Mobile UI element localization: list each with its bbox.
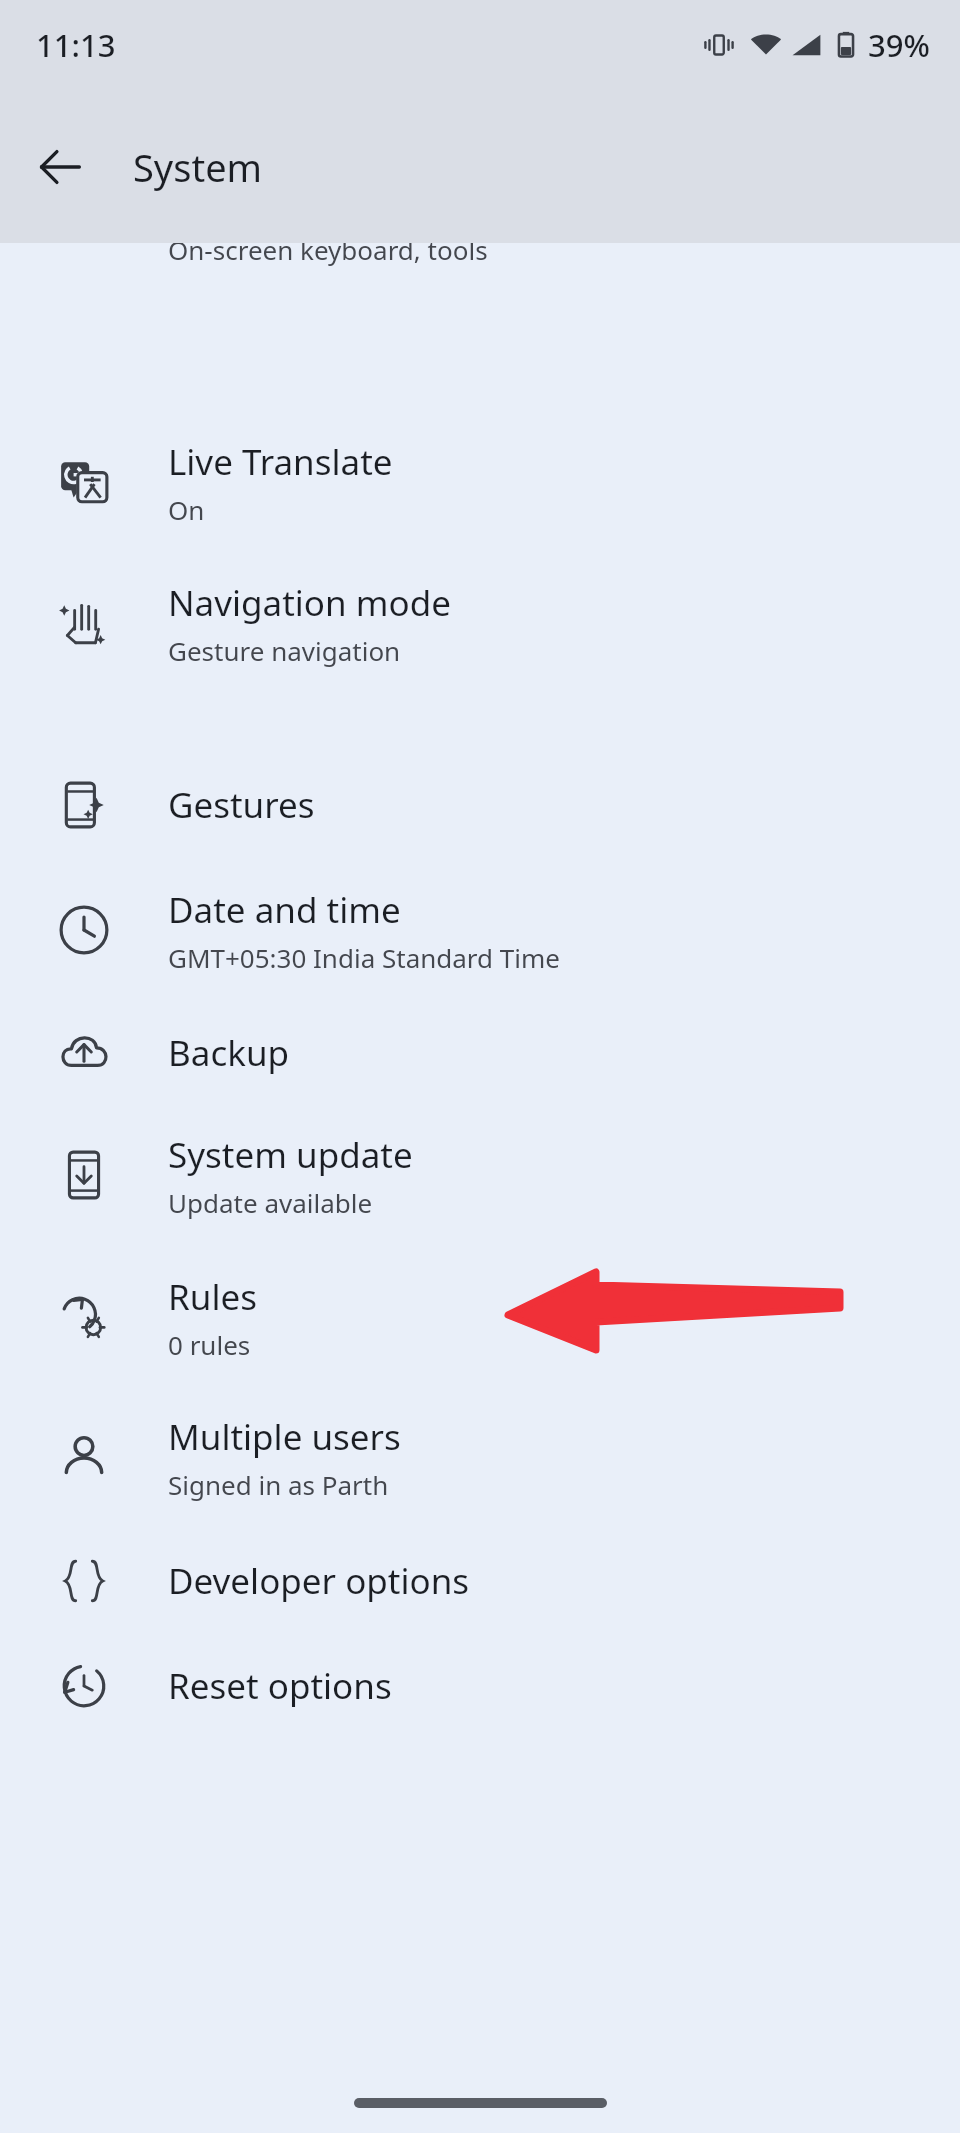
staticText: Reset options bbox=[168, 1662, 392, 1710]
staticText: Backup bbox=[168, 1029, 290, 1077]
staticText: 11:13 bbox=[36, 24, 116, 66]
button[interactable]: Gestures bbox=[0, 752, 960, 857]
staticText: Multiple users bbox=[168, 1413, 401, 1461]
button[interactable]: Back bbox=[20, 127, 100, 207]
staticText: Rules bbox=[168, 1273, 257, 1321]
button[interactable]: Multiple users bbox=[0, 1387, 960, 1527]
staticText: Live Translate bbox=[168, 438, 393, 486]
staticText: Signed in as Parth bbox=[168, 1467, 389, 1502]
staticText: Keyboard bbox=[168, 178, 325, 226]
staticText: On bbox=[168, 492, 205, 527]
button[interactable]: Rules bbox=[0, 1247, 960, 1387]
button[interactable]: Reset options bbox=[0, 1633, 960, 1738]
staticText: Gesture navigation bbox=[168, 633, 401, 668]
button[interactable]: Developer options bbox=[0, 1528, 960, 1633]
button[interactable]: Navigation mode bbox=[0, 553, 960, 693]
staticText: GMT+05:30 India Standard Time bbox=[168, 940, 560, 975]
staticText: 39% bbox=[868, 24, 930, 66]
staticText: 0 rules bbox=[168, 1327, 251, 1362]
staticText: Update available bbox=[168, 1185, 373, 1220]
staticText: Navigation mode bbox=[168, 579, 451, 627]
staticText: Date and time bbox=[168, 886, 401, 934]
staticText: System bbox=[133, 141, 263, 193]
button[interactable]: Live Translate bbox=[0, 412, 960, 552]
button[interactable]: System update bbox=[0, 1105, 960, 1245]
staticText: Gestures bbox=[168, 781, 315, 829]
staticText: System update bbox=[168, 1131, 413, 1179]
button[interactable]: Backup bbox=[0, 1000, 960, 1105]
staticText: Developer options bbox=[168, 1557, 470, 1605]
staticText: On-screen keyboard, tools bbox=[168, 232, 488, 267]
button[interactable]: Keyboard bbox=[0, 152, 960, 292]
button[interactable]: Date and time bbox=[0, 860, 960, 1000]
